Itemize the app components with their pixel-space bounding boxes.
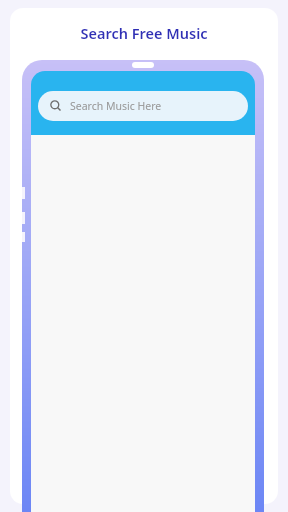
button[interactable]: Search Free Music xyxy=(0,23,288,43)
staticText: Search Music Here xyxy=(70,99,162,113)
staticText: Search Free Music xyxy=(80,23,208,43)
other: Search xyxy=(50,100,62,112)
button[interactable]: Search xyxy=(38,91,248,121)
